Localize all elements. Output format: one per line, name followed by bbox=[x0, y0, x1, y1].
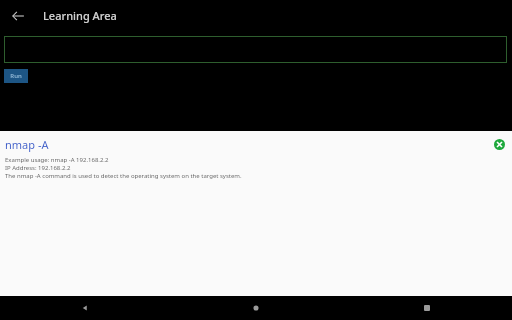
staticText: The nmap -A command is used to detect th… bbox=[5, 172, 242, 180]
button[interactable]: Recents bbox=[341, 296, 512, 320]
button[interactable]: Status bbox=[492, 137, 506, 151]
button[interactable]: nmap -A bbox=[5, 137, 486, 180]
staticText: IP Address: 192.168.2.2 bbox=[5, 164, 71, 172]
button[interactable]: Back bbox=[0, 296, 170, 320]
button[interactable] bbox=[4, 36, 507, 63]
staticText: Example usage: nmap -A 192.168.2.2 bbox=[5, 156, 109, 164]
staticText: nmap -A bbox=[5, 137, 49, 152]
staticText: Run bbox=[10, 72, 22, 80]
button[interactable]: Run bbox=[4, 69, 28, 83]
button[interactable]: Home bbox=[170, 296, 341, 320]
staticText: Learning Area bbox=[43, 8, 117, 23]
button[interactable]: Back bbox=[6, 4, 30, 28]
